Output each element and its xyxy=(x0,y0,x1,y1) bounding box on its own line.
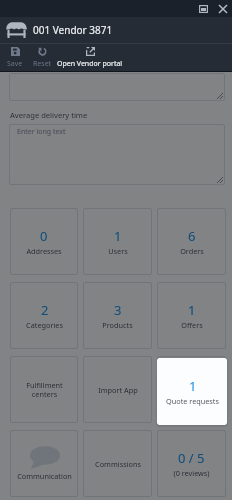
button[interactable]: Enter long text xyxy=(9,124,225,185)
staticText: Commissions xyxy=(95,459,141,469)
button[interactable]: 1 xyxy=(83,208,152,275)
staticText: Fulfillment centers xyxy=(26,380,63,399)
staticText: 001 Vendor 3871 xyxy=(33,23,113,37)
staticText: Communication xyxy=(17,471,72,481)
button[interactable]: Fulfillment centers xyxy=(10,356,78,423)
staticText: 1 xyxy=(188,375,196,393)
staticText: 0 / 5 xyxy=(178,449,205,467)
button[interactable]: Save xyxy=(4,47,26,69)
staticText: 6 xyxy=(188,227,196,245)
staticText: Categories xyxy=(26,320,63,330)
staticText: 0 xyxy=(40,227,48,245)
button[interactable]: 1 xyxy=(157,282,226,349)
staticText: Quote requests xyxy=(165,394,218,404)
staticText: 3 xyxy=(114,301,122,319)
staticText: Enter long text xyxy=(17,127,66,137)
button[interactable]: Open Vendor portal xyxy=(56,47,124,69)
button[interactable]: Maximize xyxy=(195,0,212,17)
staticText: 1 xyxy=(188,301,196,319)
staticText: Open Vendor portal xyxy=(57,59,123,69)
button[interactable]: 3 xyxy=(83,282,152,349)
button[interactable]: Import App xyxy=(83,356,152,423)
button[interactable]: 2 xyxy=(10,282,78,349)
button[interactable]: Reset xyxy=(30,47,54,69)
staticText: (0 reviews) xyxy=(173,468,210,478)
button[interactable]: 1 xyxy=(157,358,227,425)
button[interactable]: Commissions xyxy=(83,430,152,497)
staticText: Reset xyxy=(33,59,52,69)
staticText: Average delivery time xyxy=(10,110,88,120)
button[interactable]: 0 / 5 xyxy=(157,430,226,497)
staticText: Addresses xyxy=(26,246,62,256)
staticText: 2 xyxy=(41,301,49,319)
staticText: 1 xyxy=(189,377,197,395)
staticText: Offers xyxy=(181,320,203,330)
button[interactable]: 1 xyxy=(157,356,226,423)
button[interactable]: 0 xyxy=(10,208,78,275)
button[interactable]: Close xyxy=(214,0,231,17)
button[interactable] xyxy=(9,73,225,101)
staticText: 1 xyxy=(114,227,122,245)
button[interactable]: Communication xyxy=(10,430,78,497)
staticText: Users xyxy=(108,246,128,256)
staticText: Quote requests xyxy=(166,396,219,406)
button[interactable]: 6 xyxy=(157,208,226,275)
staticText: Products xyxy=(102,320,133,330)
staticText: Import App xyxy=(98,385,138,395)
staticText: Orders xyxy=(180,246,204,256)
staticText: Save xyxy=(7,59,23,69)
